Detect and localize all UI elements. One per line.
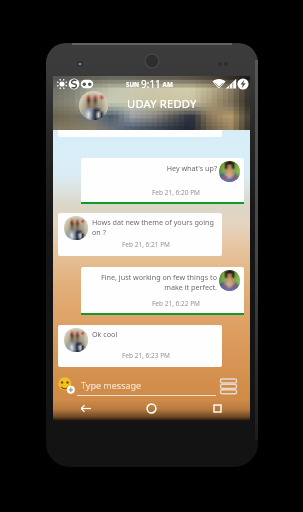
- button[interactable]: SUN: [53, 76, 250, 130]
- staticText: Feb 21, 6:23 PM: [70, 351, 222, 360]
- staticText: Feb 21, 6:21 PM: [70, 240, 222, 249]
- staticText: SUN: [126, 80, 141, 88]
- staticText: make it perfect.: [81, 282, 217, 292]
- button[interactable]: Back: [77, 400, 94, 417]
- staticText: on ?: [92, 227, 106, 237]
- button[interactable]: Ok cool: [58, 325, 222, 367]
- button[interactable]: Recents: [209, 400, 226, 417]
- staticText: Feb 21, 6:20 PM: [108, 188, 244, 197]
- staticText: 9:11: [141, 77, 161, 91]
- button[interactable]: Insert emoji: [58, 377, 75, 394]
- staticText: Feb 21, 6:22 PM: [108, 299, 244, 308]
- staticText: Fine, just working on few things to: [81, 272, 217, 282]
- staticText: Feb 21, 6:19 PM: [58, 119, 222, 128]
- button[interactable]: Feb 21, 6:19 PM: [58, 102, 222, 137]
- staticText: Hows dat new theme of yours going: [92, 217, 214, 227]
- staticText: UDAY REDDY: [127, 96, 197, 111]
- staticText: Hey what's up?: [81, 163, 217, 173]
- button[interactable]: Home: [143, 400, 160, 417]
- button[interactable]: Keyboard: [219, 377, 238, 394]
- button[interactable]: Hows dat new theme of yours going: [58, 213, 222, 256]
- staticText: Type message: [81, 379, 142, 391]
- button[interactable]: Contact photo: [79, 91, 108, 120]
- staticText: AM: [161, 80, 173, 88]
- button[interactable]: Fine, just working on few things to: [81, 267, 244, 315]
- button[interactable]: Hey what's up?: [81, 158, 244, 204]
- staticText: Ok cool: [92, 329, 118, 339]
